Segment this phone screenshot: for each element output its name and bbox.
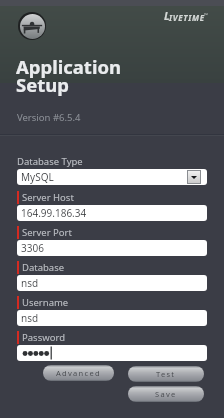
button[interactable]: MySQL (17, 169, 207, 185)
button[interactable]: Test (128, 366, 204, 382)
staticText: Username (22, 296, 69, 309)
staticText: ™ (204, 12, 208, 19)
button[interactable]: nsd (17, 310, 207, 326)
staticText: Save (155, 389, 177, 399)
button[interactable]: App logo (18, 12, 46, 40)
staticText: Server Host (22, 191, 74, 204)
staticText: Test (156, 369, 176, 379)
staticText: L (164, 8, 170, 23)
staticText: Database Type (17, 155, 83, 168)
button[interactable]: Save (128, 386, 204, 402)
staticText: Server Port (22, 226, 72, 239)
staticText: Application Setup (16, 54, 122, 98)
staticText: 164.99.186.34 (21, 206, 87, 220)
staticText: Database (22, 261, 65, 274)
staticText: Password (22, 331, 65, 344)
staticText: MySQL (21, 170, 54, 184)
staticText: 3306 (21, 241, 44, 255)
button[interactable]: 164.99.186.34 (17, 205, 207, 221)
staticText: Version #6.5.4 (17, 111, 81, 124)
staticText: nsd (21, 276, 39, 290)
button[interactable]: Advanced (43, 365, 114, 381)
staticText: Advanced (56, 368, 101, 378)
staticText: IVETIME (169, 12, 205, 23)
button[interactable]: Open dropdown (187, 170, 201, 184)
button[interactable]: 3306 (17, 240, 207, 256)
staticText: nsd (21, 311, 39, 325)
button[interactable]: nsd (17, 275, 207, 291)
button[interactable] (17, 345, 207, 361)
